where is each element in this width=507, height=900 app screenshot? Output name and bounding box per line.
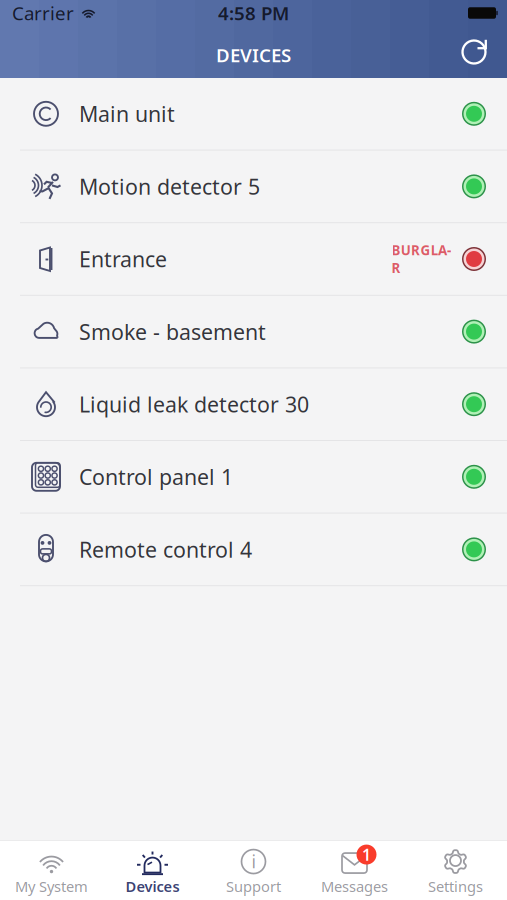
button[interactable]: Control panel 1 — [0, 441, 507, 513]
staticText: Messages — [321, 877, 388, 896]
staticText: Main unit — [79, 100, 175, 128]
staticText: BURGLAR — [391, 241, 451, 277]
staticText: DEVICES — [216, 43, 291, 67]
staticText: Devices — [125, 877, 179, 896]
staticText: i — [251, 850, 255, 873]
button[interactable]: 1 — [304, 841, 405, 900]
button[interactable]: My System — [1, 841, 102, 900]
button[interactable]: Liquid leak detector 30 — [0, 368, 507, 440]
button[interactable]: Main unit — [0, 78, 507, 150]
button[interactable]: Motion detector 5 — [0, 151, 507, 222]
staticText: Liquid leak detector 30 — [79, 390, 309, 418]
button[interactable]: Remote control 4 — [0, 514, 507, 585]
button[interactable]: Settings — [405, 841, 506, 900]
staticText: My System — [15, 877, 88, 896]
button[interactable]: Entrance — [0, 223, 507, 295]
staticText: 4:58 PM — [218, 1, 289, 25]
staticText: Settings — [428, 877, 483, 896]
staticText: Motion detector 5 — [79, 172, 260, 200]
button[interactable]: Smoke - basement — [0, 296, 507, 367]
staticText: Support — [226, 877, 281, 896]
button[interactable]: Refresh — [454, 32, 494, 72]
staticText: Smoke - basement — [79, 317, 266, 346]
staticText: Carrier — [12, 1, 74, 25]
staticText: Control panel 1 — [79, 463, 233, 491]
button[interactable]: i — [203, 841, 304, 900]
button[interactable]: Devices — [102, 841, 203, 900]
staticText: 1 — [362, 844, 371, 865]
staticText: Entrance — [79, 245, 167, 273]
staticText: Remote control 4 — [79, 535, 252, 563]
